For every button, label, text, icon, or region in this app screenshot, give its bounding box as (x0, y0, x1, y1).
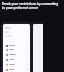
button[interactable] (6, 57, 28, 62)
staticText: Break your restrictions by connecting to… (2, 2, 61, 10)
button[interactable] (6, 52, 28, 57)
button[interactable] (6, 47, 28, 52)
button[interactable] (6, 67, 28, 72)
button[interactable] (1, 22, 31, 72)
button[interactable] (6, 62, 28, 67)
button[interactable] (6, 43, 28, 48)
